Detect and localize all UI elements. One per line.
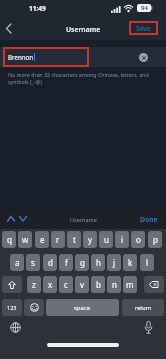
- staticText: i: [121, 234, 124, 245]
- button[interactable]: Brennon: [0, 47, 166, 67]
- staticText: h: [96, 257, 101, 268]
- staticText: x: [48, 279, 53, 290]
- button[interactable]: [24, 299, 44, 316]
- button[interactable]: n: [107, 276, 121, 293]
- button[interactable]: m: [123, 276, 137, 293]
- button[interactable]: [19, 216, 27, 221]
- staticText: y: [88, 234, 93, 245]
- staticText: Username: [66, 25, 101, 34]
- button[interactable]: d: [43, 254, 57, 271]
- button[interactable]: g: [75, 254, 89, 271]
- button[interactable]: a: [10, 254, 24, 271]
- button[interactable]: t: [67, 231, 81, 248]
- staticText: l: [146, 257, 149, 268]
- button[interactable]: c: [59, 276, 73, 293]
- button[interactable]: u: [99, 231, 113, 248]
- staticText: Username: [70, 216, 97, 223]
- staticText: b: [96, 279, 101, 290]
- button[interactable]: j: [107, 254, 121, 271]
- button[interactable]: l: [140, 254, 154, 271]
- staticText: t: [73, 234, 76, 245]
- staticText: m: [126, 279, 134, 290]
- button[interactable]: h: [91, 254, 105, 271]
- button[interactable]: [7, 216, 15, 221]
- button[interactable]: f: [59, 254, 73, 271]
- staticText: 123: [7, 304, 17, 311]
- button[interactable]: 123: [2, 299, 22, 316]
- button[interactable]: y: [83, 231, 97, 248]
- staticText: Save: [136, 24, 151, 33]
- button[interactable]: [139, 53, 148, 62]
- staticText: c: [64, 279, 68, 290]
- staticText: f: [65, 257, 68, 268]
- staticText: v: [80, 279, 85, 290]
- button[interactable]: q: [2, 231, 16, 248]
- staticText: Brennon: [8, 53, 34, 61]
- staticText: u: [104, 234, 109, 245]
- button[interactable]: z: [27, 276, 41, 293]
- button[interactable]: o: [131, 231, 145, 248]
- button[interactable]: return: [122, 299, 164, 316]
- button[interactable]: Save: [129, 21, 158, 35]
- button[interactable]: [6, 24, 11, 33]
- staticText: 11:49: [29, 4, 46, 13]
- staticText: k: [128, 257, 133, 268]
- button[interactable]: [144, 321, 153, 334]
- button[interactable]: v: [75, 276, 89, 293]
- button[interactable]: [10, 322, 21, 333]
- staticText: space: [74, 304, 91, 312]
- button[interactable]: k: [123, 254, 137, 271]
- button[interactable]: r: [51, 231, 65, 248]
- staticText: j: [113, 257, 116, 268]
- staticText: p: [153, 234, 158, 245]
- staticText: e: [40, 234, 45, 245]
- staticText: w: [22, 234, 29, 245]
- staticText: o: [136, 234, 141, 245]
- button[interactable]: e: [35, 231, 49, 248]
- button[interactable]: p: [148, 231, 162, 248]
- button[interactable]: i: [115, 231, 129, 248]
- staticText: 94: [141, 4, 148, 12]
- staticText: a: [15, 257, 20, 268]
- staticText: z: [32, 279, 36, 290]
- button[interactable]: w: [18, 231, 32, 248]
- staticText: d: [48, 257, 53, 268]
- button[interactable]: [2, 276, 22, 293]
- staticText: No more than 32 characters among Chinese…: [8, 71, 160, 86]
- staticText: return: [135, 304, 152, 311]
- button[interactable]: x: [43, 276, 57, 293]
- staticText: n: [112, 279, 117, 290]
- button[interactable]: Done: [140, 215, 158, 224]
- button[interactable]: b: [91, 276, 105, 293]
- staticText: g: [80, 257, 85, 268]
- button[interactable]: space: [46, 299, 119, 316]
- staticText: Done: [140, 215, 158, 224]
- staticText: r: [56, 234, 60, 245]
- button[interactable]: [144, 276, 164, 293]
- button[interactable]: s: [26, 254, 40, 271]
- staticText: q: [7, 234, 12, 245]
- staticText: s: [31, 257, 35, 268]
